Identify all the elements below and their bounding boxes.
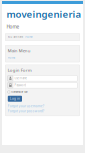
staticText: Log in <box>10 97 20 101</box>
staticText: Home <box>25 35 32 39</box>
button[interactable]: Forgot your username? <box>8 102 77 108</box>
button[interactable]: Remember Me <box>8 88 77 94</box>
staticText: Remember Me <box>11 90 27 94</box>
button[interactable]: Password <box>8 82 77 88</box>
staticText: You are here: <box>8 35 24 39</box>
staticText: moveingenieria <box>7 8 82 21</box>
staticText: Login Form <box>8 67 32 73</box>
staticText: Username <box>14 76 27 80</box>
staticText: Home <box>7 23 20 30</box>
button[interactable]: Log in <box>8 96 22 102</box>
staticText: Forgot your password? <box>8 109 44 113</box>
button[interactable]: Home <box>25 35 32 39</box>
button[interactable]: moveingenieria <box>2 4 83 21</box>
button[interactable]: Username <box>8 75 77 81</box>
staticText: Main Menu <box>8 48 31 53</box>
staticText: Password <box>14 83 26 87</box>
button[interactable]: Home <box>8 53 77 59</box>
staticText: Home <box>8 56 16 59</box>
staticText: Forgot your username? <box>8 104 44 108</box>
button[interactable]: Forgot your password? <box>8 108 77 113</box>
